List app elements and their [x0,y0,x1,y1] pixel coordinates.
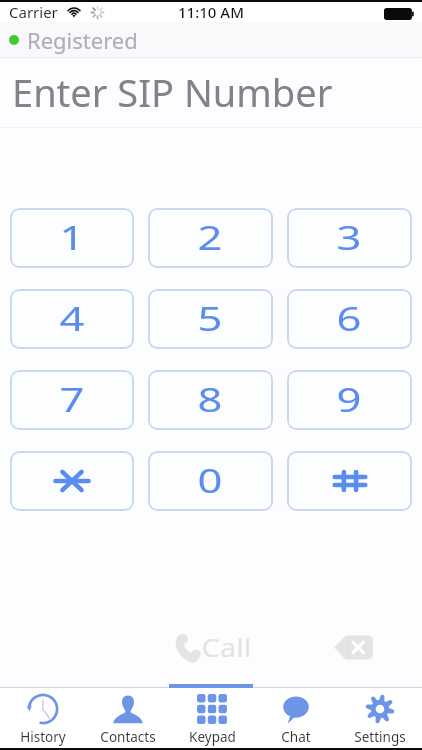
staticText: Registered [27,25,138,55]
staticText: 1 [60,216,85,260]
button[interactable]: 0 [148,451,273,511]
button[interactable]: 8 [148,370,273,430]
staticText: 4 [60,297,85,341]
staticText: Settings [354,728,406,746]
staticText: Keypad [189,728,236,746]
staticText: Enter SIP Number [12,66,333,118]
button[interactable]: Backspace [334,634,373,661]
staticText: 2 [198,216,223,260]
button[interactable]: Keypad [170,688,254,748]
staticText: 9 [337,378,362,422]
button[interactable] [10,451,134,511]
button[interactable]: Contacts [85,688,170,748]
staticText: 0 [198,459,223,503]
staticText: 8 [198,378,223,422]
button[interactable] [287,451,412,511]
button[interactable]: 4 [10,289,134,349]
staticText: History [20,728,66,746]
button[interactable]: 1 [10,208,134,268]
staticText: 3 [337,216,362,260]
button[interactable]: Settings [338,688,422,748]
staticText: 11:10 AM [178,2,244,22]
button[interactable]: Chat [254,688,338,748]
staticText: Carrier [9,2,58,22]
staticText: Contacts [100,728,156,746]
button[interactable]: 7 [10,370,134,430]
staticText: 7 [60,378,85,422]
button[interactable]: 3 [287,208,412,268]
button[interactable]: 6 [287,289,412,349]
staticText: Call [202,630,251,664]
button[interactable]: History [0,688,85,748]
button[interactable]: Call [175,630,248,664]
staticText: Chat [281,728,311,746]
staticText: 5 [198,297,223,341]
button[interactable]: 5 [148,289,273,349]
staticText: 6 [337,297,362,341]
button[interactable]: 9 [287,370,412,430]
button[interactable]: 2 [148,208,273,268]
